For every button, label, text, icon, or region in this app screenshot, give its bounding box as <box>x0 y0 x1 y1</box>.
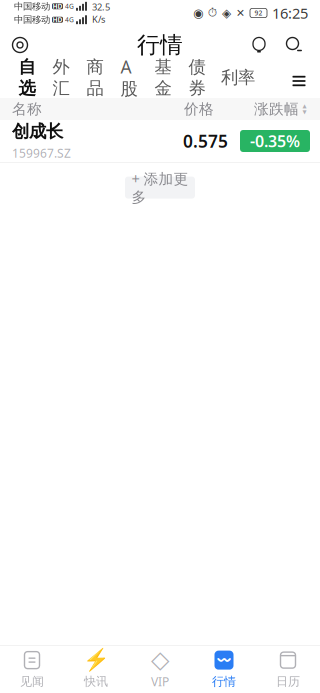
button[interactable]: 见闻 <box>0 646 64 692</box>
staticText: 自选 <box>18 56 35 99</box>
staticText: ◈ <box>222 6 231 20</box>
staticText: VIP <box>151 673 169 689</box>
staticText: 涨跌幅 <box>254 100 299 118</box>
button[interactable]: 利率 <box>214 64 262 98</box>
staticText: 外汇 <box>52 56 69 99</box>
button[interactable]: 外汇 <box>44 64 78 98</box>
staticText: 中国移动 <box>14 14 50 25</box>
button[interactable]: ⚡ <box>64 646 128 692</box>
staticText: ◇ <box>151 646 169 673</box>
staticText: -0.35% <box>250 130 300 152</box>
staticText: 行情 <box>212 674 236 689</box>
staticText: 行情 <box>137 31 183 59</box>
button[interactable]: 日历 <box>256 646 320 692</box>
staticText: 32.5 <box>92 1 110 13</box>
staticText: ▼ <box>302 109 306 115</box>
staticText: A股 <box>120 55 137 100</box>
button[interactable]: 自选 <box>10 64 44 98</box>
staticText: 快讯 <box>84 674 108 689</box>
staticText: 日历 <box>276 674 300 689</box>
button[interactable]: 债券 <box>180 64 214 98</box>
button[interactable]: 涨跌幅 <box>254 100 320 118</box>
staticText: ✕ <box>236 7 245 19</box>
staticText: 债券 <box>188 56 205 99</box>
staticText: 4G <box>65 2 74 11</box>
staticText: 中国移动 <box>14 0 50 12</box>
button[interactable]: 设置 <box>0 26 40 64</box>
staticText: 〰 <box>215 652 232 668</box>
staticText: ▲ <box>302 103 306 109</box>
button[interactable]: + 添加更多 <box>125 177 195 199</box>
staticText: HD <box>52 15 62 24</box>
button[interactable]: 商品 <box>78 64 112 98</box>
staticText: 价格 <box>184 100 214 118</box>
staticText: 见闻 <box>20 674 44 689</box>
staticText: + 添加更多 <box>131 169 188 206</box>
staticText: 创成长 <box>12 121 63 142</box>
staticText: ◉ <box>193 6 203 20</box>
staticText: 名称 <box>12 100 42 118</box>
button[interactable]: ◇ <box>128 646 192 692</box>
button[interactable]: 通知 <box>242 26 276 64</box>
staticText: 商品 <box>86 56 103 99</box>
staticText: 159967.SZ <box>12 145 71 161</box>
staticText: ⚡ <box>82 648 109 672</box>
staticText: 16:25 <box>272 3 308 23</box>
staticText: K/s <box>92 13 105 25</box>
button[interactable]: A股 <box>112 64 146 98</box>
staticText: 0.575 <box>183 129 228 152</box>
button[interactable]: 更多分类 <box>282 64 316 98</box>
button[interactable]: 基金 <box>146 64 180 98</box>
staticText: 利率 <box>221 67 255 88</box>
button[interactable]: 搜索 <box>276 26 312 64</box>
button[interactable]: 创成长 <box>0 120 320 163</box>
staticText: 4G <box>65 15 74 24</box>
staticText: 基金 <box>154 56 171 99</box>
staticText: 92 <box>254 9 262 17</box>
button[interactable]: 〰 <box>192 646 256 692</box>
staticText: ⏱ <box>208 7 217 19</box>
staticText: HD <box>52 2 62 11</box>
